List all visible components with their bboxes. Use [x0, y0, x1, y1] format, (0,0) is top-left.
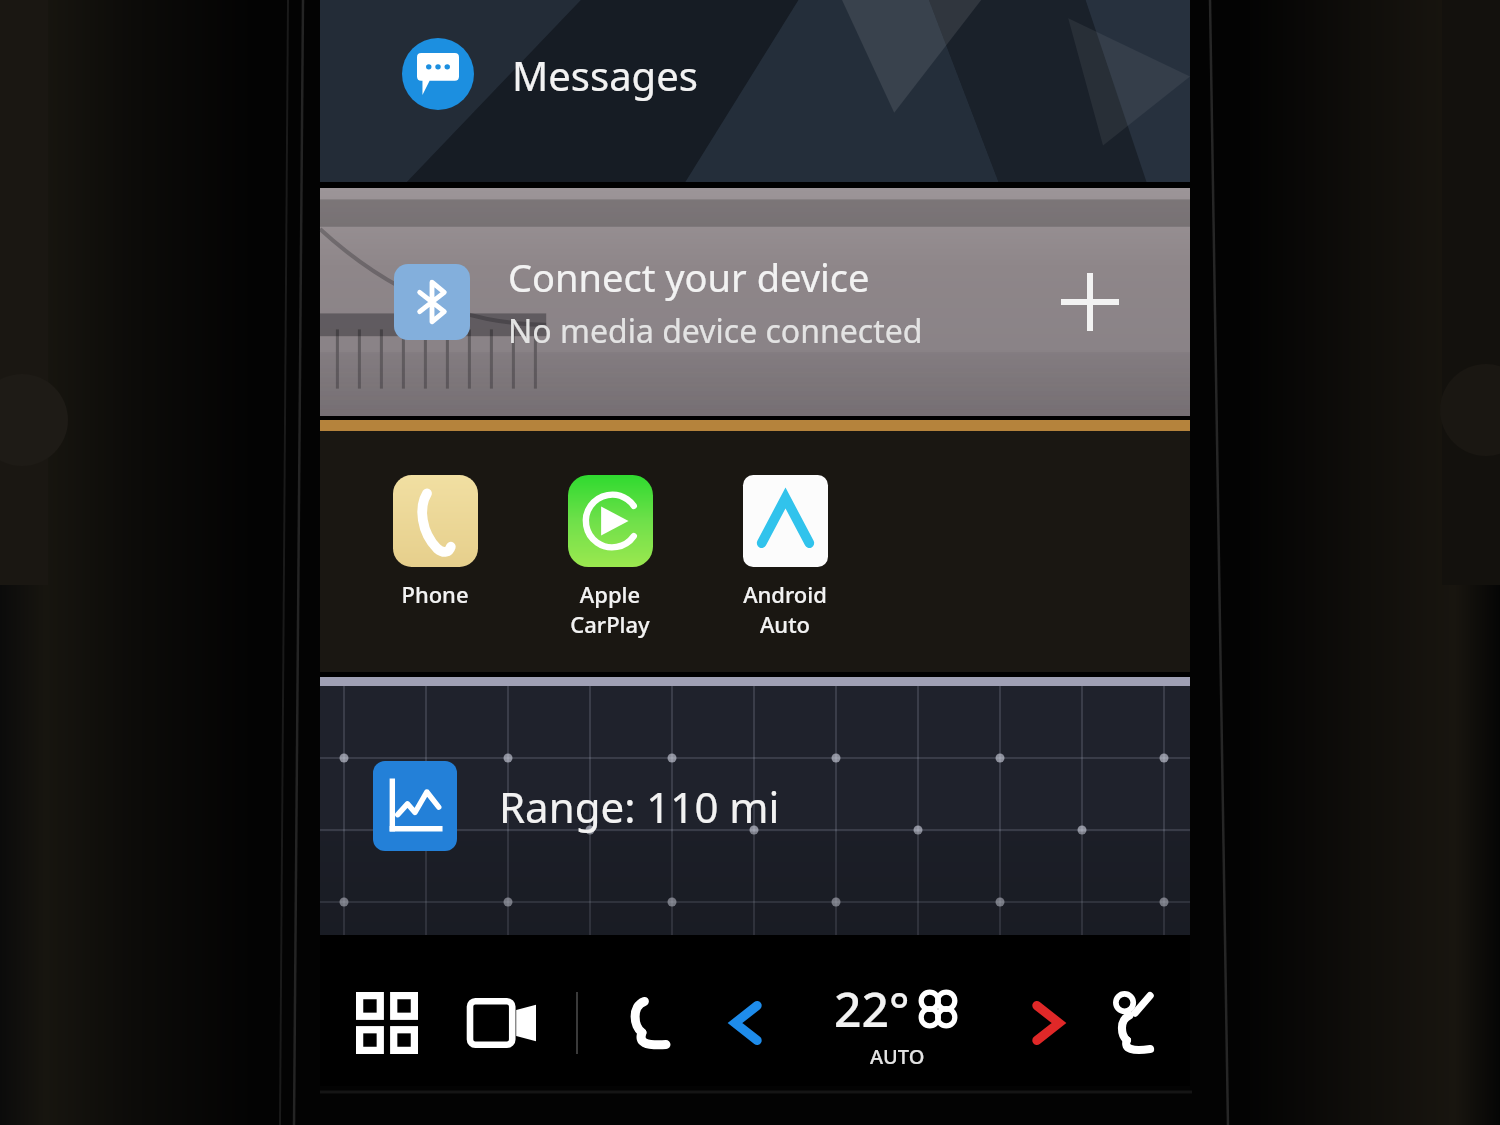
staticText: No media device connected — [508, 309, 923, 353]
button[interactable]: Phone — [384, 475, 486, 609]
button[interactable]: Android Auto — [734, 475, 836, 639]
button[interactable]: Driver seat heat — [608, 976, 688, 1070]
button[interactable]: Connect your device — [320, 188, 1190, 416]
button[interactable]: Range: 110 mi — [320, 677, 1190, 935]
staticText: 22° — [834, 976, 910, 1041]
button[interactable]: 22° — [794, 976, 1000, 1070]
button[interactable]: Airflow — [1106, 976, 1164, 1070]
button[interactable]: Camera — [460, 976, 546, 1070]
staticText: Phone — [401, 579, 469, 609]
staticText: Range: 110 mi — [499, 778, 780, 835]
staticText: Apple CarPlay — [559, 579, 661, 639]
staticText: Connect your device — [508, 251, 870, 303]
staticText: Messages — [512, 48, 698, 102]
button[interactable]: Decrease temperature — [714, 976, 780, 1070]
staticText: AUTO — [870, 1043, 925, 1070]
button[interactable]: Apps — [346, 976, 428, 1070]
button[interactable]: Add device — [1042, 254, 1138, 350]
button[interactable]: Messages — [320, 0, 1190, 182]
button[interactable]: Apple CarPlay — [559, 475, 661, 639]
staticText: Android Auto — [734, 579, 836, 639]
button[interactable]: Increase temperature — [1014, 976, 1080, 1070]
